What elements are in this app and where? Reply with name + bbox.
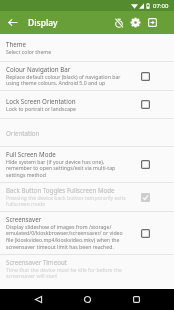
button[interactable]: Theme [0, 34, 174, 61]
button[interactable]: Screensaver Timeout [0, 255, 174, 283]
button[interactable]: Toggle setting [141, 100, 150, 109]
button[interactable]: Toggle setting [141, 72, 150, 81]
button[interactable]: Back Button Toggles Fullscreen Mode [0, 183, 174, 211]
button[interactable]: Orientation [0, 119, 174, 146]
staticText: Theme [6, 40, 27, 48]
button[interactable]: Navigate up [0, 11, 24, 34]
button[interactable]: Toggle setting [141, 229, 150, 238]
staticText: Screensaver [6, 215, 42, 223]
button[interactable]: Timer off [110, 11, 127, 34]
staticText: Pressing the device back button temporar… [6, 194, 131, 208]
staticText: Hide system bar (if your device has one)… [6, 158, 131, 179]
staticText: Replace default colour (black) of naviga… [6, 73, 131, 87]
staticText: Display slideshow of images from /storag… [6, 223, 131, 251]
button[interactable]: Back [18, 289, 58, 310]
staticText: Back Button Toggles Fullscreen Mode [6, 186, 115, 194]
staticText: Orientation [6, 129, 40, 137]
staticText: Lock Screen Orientation [6, 97, 76, 105]
staticText: Screensaver Timeout [6, 258, 67, 266]
staticText: Display [28, 17, 58, 29]
button[interactable]: Screensaver [0, 212, 174, 254]
button[interactable]: Full Screen Mode [0, 147, 174, 182]
button[interactable]: Settings [127, 11, 144, 34]
staticText: Time that the device must be idle for be… [6, 266, 131, 280]
button[interactable]: Toggle setting [141, 160, 150, 169]
button[interactable]: Lock Screen Orientation [0, 91, 174, 118]
button[interactable]: Recent apps [116, 289, 156, 310]
button[interactable]: Home [67, 289, 107, 310]
staticText: Colour Navigation Bar [6, 65, 71, 73]
button[interactable]: Colour Navigation Bar [0, 62, 174, 90]
button[interactable]: Exit app [144, 11, 161, 34]
staticText: Select color theme [6, 48, 52, 55]
button[interactable]: Toggle setting [141, 193, 150, 202]
staticText: Full Screen Mode [6, 150, 56, 158]
staticText: 07:00 [153, 2, 169, 10]
staticText: Lock to portrait or landscape [6, 105, 76, 112]
